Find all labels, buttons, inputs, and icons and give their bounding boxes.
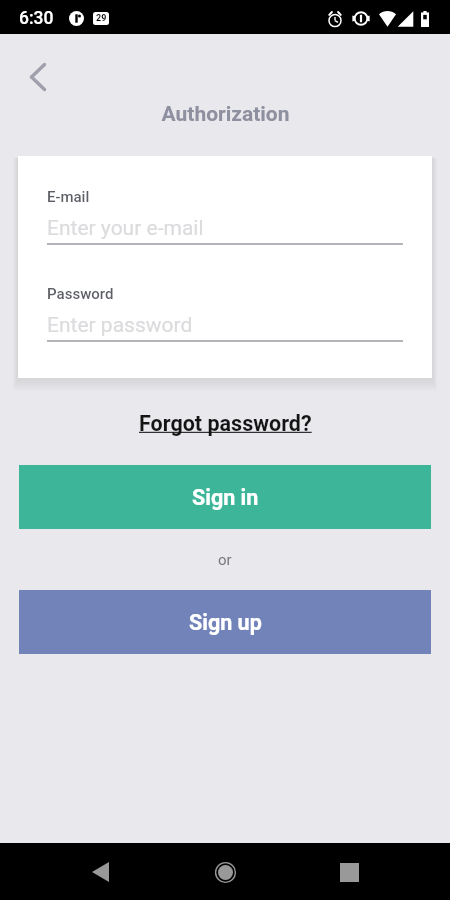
button[interactable]: Sign in [19, 465, 431, 529]
staticText: Password [47, 285, 114, 303]
button[interactable]: Back [16, 54, 62, 100]
button[interactable]: Home [194, 846, 256, 898]
staticText: E-mail [47, 188, 90, 206]
staticText: Enter your e-mail [47, 216, 204, 241]
staticText: or [218, 551, 232, 569]
staticText: Authorization [161, 102, 290, 127]
staticText: 6:30 [19, 8, 54, 29]
button[interactable]: Recent apps [318, 846, 380, 898]
staticText: Enter password [47, 313, 193, 338]
button[interactable]: Sign up [19, 590, 431, 654]
button[interactable]: Forgot password? [133, 409, 318, 438]
staticText: Sign up [189, 610, 262, 635]
button[interactable]: Back [69, 846, 131, 898]
staticText: Sign in [192, 485, 259, 510]
staticText: 29 [96, 13, 107, 24]
